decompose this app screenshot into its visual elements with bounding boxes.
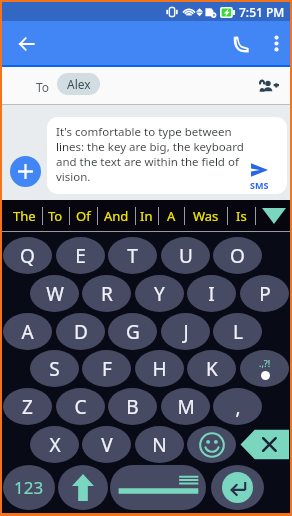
button[interactable]: A bbox=[3, 313, 52, 350]
button[interactable]: Add people bbox=[255, 72, 283, 100]
button[interactable]: Q bbox=[3, 237, 52, 274]
staticText: J bbox=[183, 319, 189, 345]
staticText: B bbox=[126, 394, 139, 420]
button[interactable]: J bbox=[161, 313, 210, 350]
button[interactable]: U bbox=[161, 237, 210, 274]
staticText: .,?! bbox=[259, 357, 271, 369]
staticText: It's comfortable to type between lines: … bbox=[56, 124, 245, 184]
button[interactable]: D bbox=[56, 313, 105, 350]
staticText: E bbox=[75, 243, 86, 269]
button[interactable]: Y bbox=[135, 275, 184, 312]
button[interactable]: Shift bbox=[58, 465, 108, 510]
staticText: H bbox=[152, 356, 167, 382]
staticText: D bbox=[74, 319, 88, 345]
button[interactable]: Alex bbox=[57, 73, 100, 95]
staticText: P bbox=[259, 281, 271, 307]
button[interactable]: A bbox=[158, 200, 184, 232]
button[interactable]: K bbox=[187, 350, 236, 387]
button[interactable]: B bbox=[108, 388, 157, 425]
staticText: Q bbox=[20, 243, 35, 269]
button[interactable]: V bbox=[82, 426, 131, 463]
button[interactable]: Is bbox=[227, 200, 255, 232]
staticText: R bbox=[101, 281, 113, 307]
staticText: A bbox=[21, 319, 34, 345]
button[interactable]: G bbox=[108, 313, 157, 350]
button[interactable]: Space bbox=[110, 465, 206, 510]
staticText: O bbox=[230, 243, 245, 269]
button[interactable]: P bbox=[240, 275, 289, 312]
button[interactable]: F bbox=[82, 350, 131, 387]
button[interactable]: M bbox=[161, 388, 210, 425]
button[interactable]: O bbox=[213, 237, 262, 274]
staticText: C bbox=[74, 394, 87, 420]
button[interactable]: E bbox=[56, 237, 105, 274]
staticText: Alex bbox=[67, 76, 91, 92]
button[interactable]: Emoji bbox=[187, 426, 236, 463]
staticText: U bbox=[179, 243, 193, 269]
button[interactable]: Was bbox=[184, 200, 227, 232]
staticText: SMS bbox=[250, 179, 269, 191]
button[interactable]: Z bbox=[3, 388, 52, 425]
staticText: X bbox=[49, 432, 61, 458]
staticText: M bbox=[177, 394, 195, 420]
staticText: T bbox=[127, 243, 138, 269]
staticText: Y bbox=[154, 281, 165, 307]
staticText: N bbox=[152, 432, 167, 458]
staticText: Is bbox=[236, 207, 247, 225]
button[interactable]: S bbox=[30, 350, 79, 387]
button[interactable]: In bbox=[135, 200, 158, 232]
button[interactable]: W bbox=[30, 275, 79, 312]
button[interactable]: Back bbox=[11, 29, 41, 59]
staticText: , bbox=[235, 394, 241, 420]
staticText: V bbox=[101, 432, 113, 458]
button[interactable]: C bbox=[56, 388, 105, 425]
button[interactable]: H bbox=[135, 350, 184, 387]
staticText: Was bbox=[193, 207, 219, 225]
button[interactable]: Add attachment bbox=[10, 156, 41, 187]
staticText: W bbox=[46, 281, 64, 307]
button[interactable]: More options bbox=[261, 28, 291, 58]
staticText: F bbox=[102, 356, 112, 382]
button[interactable]: R bbox=[82, 275, 131, 312]
button[interactable]: Punctuation bbox=[240, 350, 289, 387]
button[interactable]: X bbox=[30, 426, 79, 463]
staticText: And bbox=[104, 207, 129, 225]
staticText: The bbox=[13, 207, 36, 225]
staticText: G bbox=[126, 319, 140, 345]
staticText: K bbox=[206, 356, 218, 382]
button[interactable]: And bbox=[97, 200, 135, 232]
button[interactable]: T bbox=[108, 237, 157, 274]
staticText: 123 bbox=[14, 476, 44, 499]
staticText: A bbox=[167, 207, 176, 225]
staticText: 7:51 PM bbox=[239, 4, 285, 20]
button[interactable]: L bbox=[213, 313, 262, 350]
staticText: L bbox=[233, 319, 243, 345]
button[interactable]: Expand suggestions bbox=[255, 200, 292, 232]
button[interactable]: To bbox=[42, 200, 69, 232]
staticText: S bbox=[49, 356, 60, 382]
button[interactable]: Enter bbox=[211, 465, 264, 510]
button[interactable]: Call bbox=[225, 28, 257, 60]
staticText: To bbox=[48, 207, 63, 225]
staticText: I bbox=[208, 281, 215, 307]
staticText: Z bbox=[22, 394, 33, 420]
button[interactable]: Send SMS bbox=[245, 157, 287, 194]
button[interactable]: The bbox=[6, 200, 42, 232]
button[interactable]: Numbers bbox=[3, 465, 55, 510]
button[interactable]: I bbox=[187, 275, 236, 312]
button[interactable]: Backspace bbox=[240, 426, 289, 463]
button[interactable]: N bbox=[135, 426, 184, 463]
staticText: In bbox=[140, 207, 153, 225]
staticText: To bbox=[36, 79, 50, 95]
button[interactable]: Of bbox=[69, 200, 97, 232]
button[interactable]: , bbox=[213, 388, 262, 425]
staticText: Of bbox=[76, 207, 91, 225]
